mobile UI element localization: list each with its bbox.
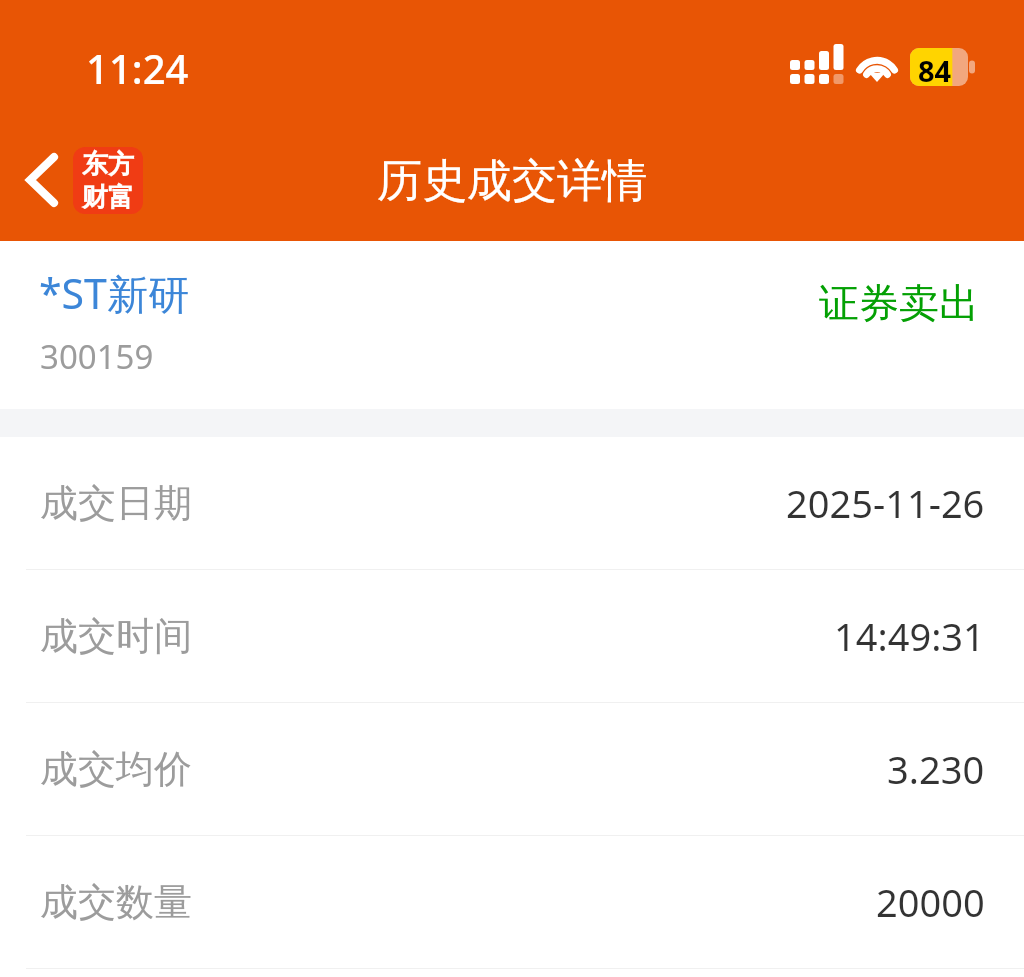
staticText: 东方	[82, 148, 134, 181]
staticText: 14:49:31	[834, 610, 985, 662]
button[interactable]: 成交均价	[0, 703, 1024, 835]
button[interactable]: Back	[8, 142, 80, 218]
staticText: 3.230	[887, 743, 985, 795]
staticText: *ST新研	[39, 265, 189, 321]
button[interactable]: 成交日期	[0, 437, 1024, 569]
staticText: 历史成交详情	[0, 153, 1024, 210]
staticText: 成交时间	[40, 612, 192, 660]
staticText: 84	[918, 51, 952, 90]
button[interactable]: 成交数量	[0, 836, 1024, 968]
staticText: 成交均价	[40, 745, 192, 793]
staticText: 300159	[40, 334, 154, 379]
staticText: 财富	[82, 181, 134, 214]
staticText: 成交日期	[40, 479, 192, 527]
staticText: 11:24	[86, 41, 189, 95]
staticText: 证券卖出	[819, 278, 979, 328]
staticText: 2025-11-26	[786, 477, 985, 529]
staticText: 成交数量	[40, 878, 192, 926]
button[interactable]: 东方财富	[73, 147, 143, 214]
staticText: 20000	[876, 876, 985, 928]
button[interactable]: 成交时间	[0, 570, 1024, 702]
